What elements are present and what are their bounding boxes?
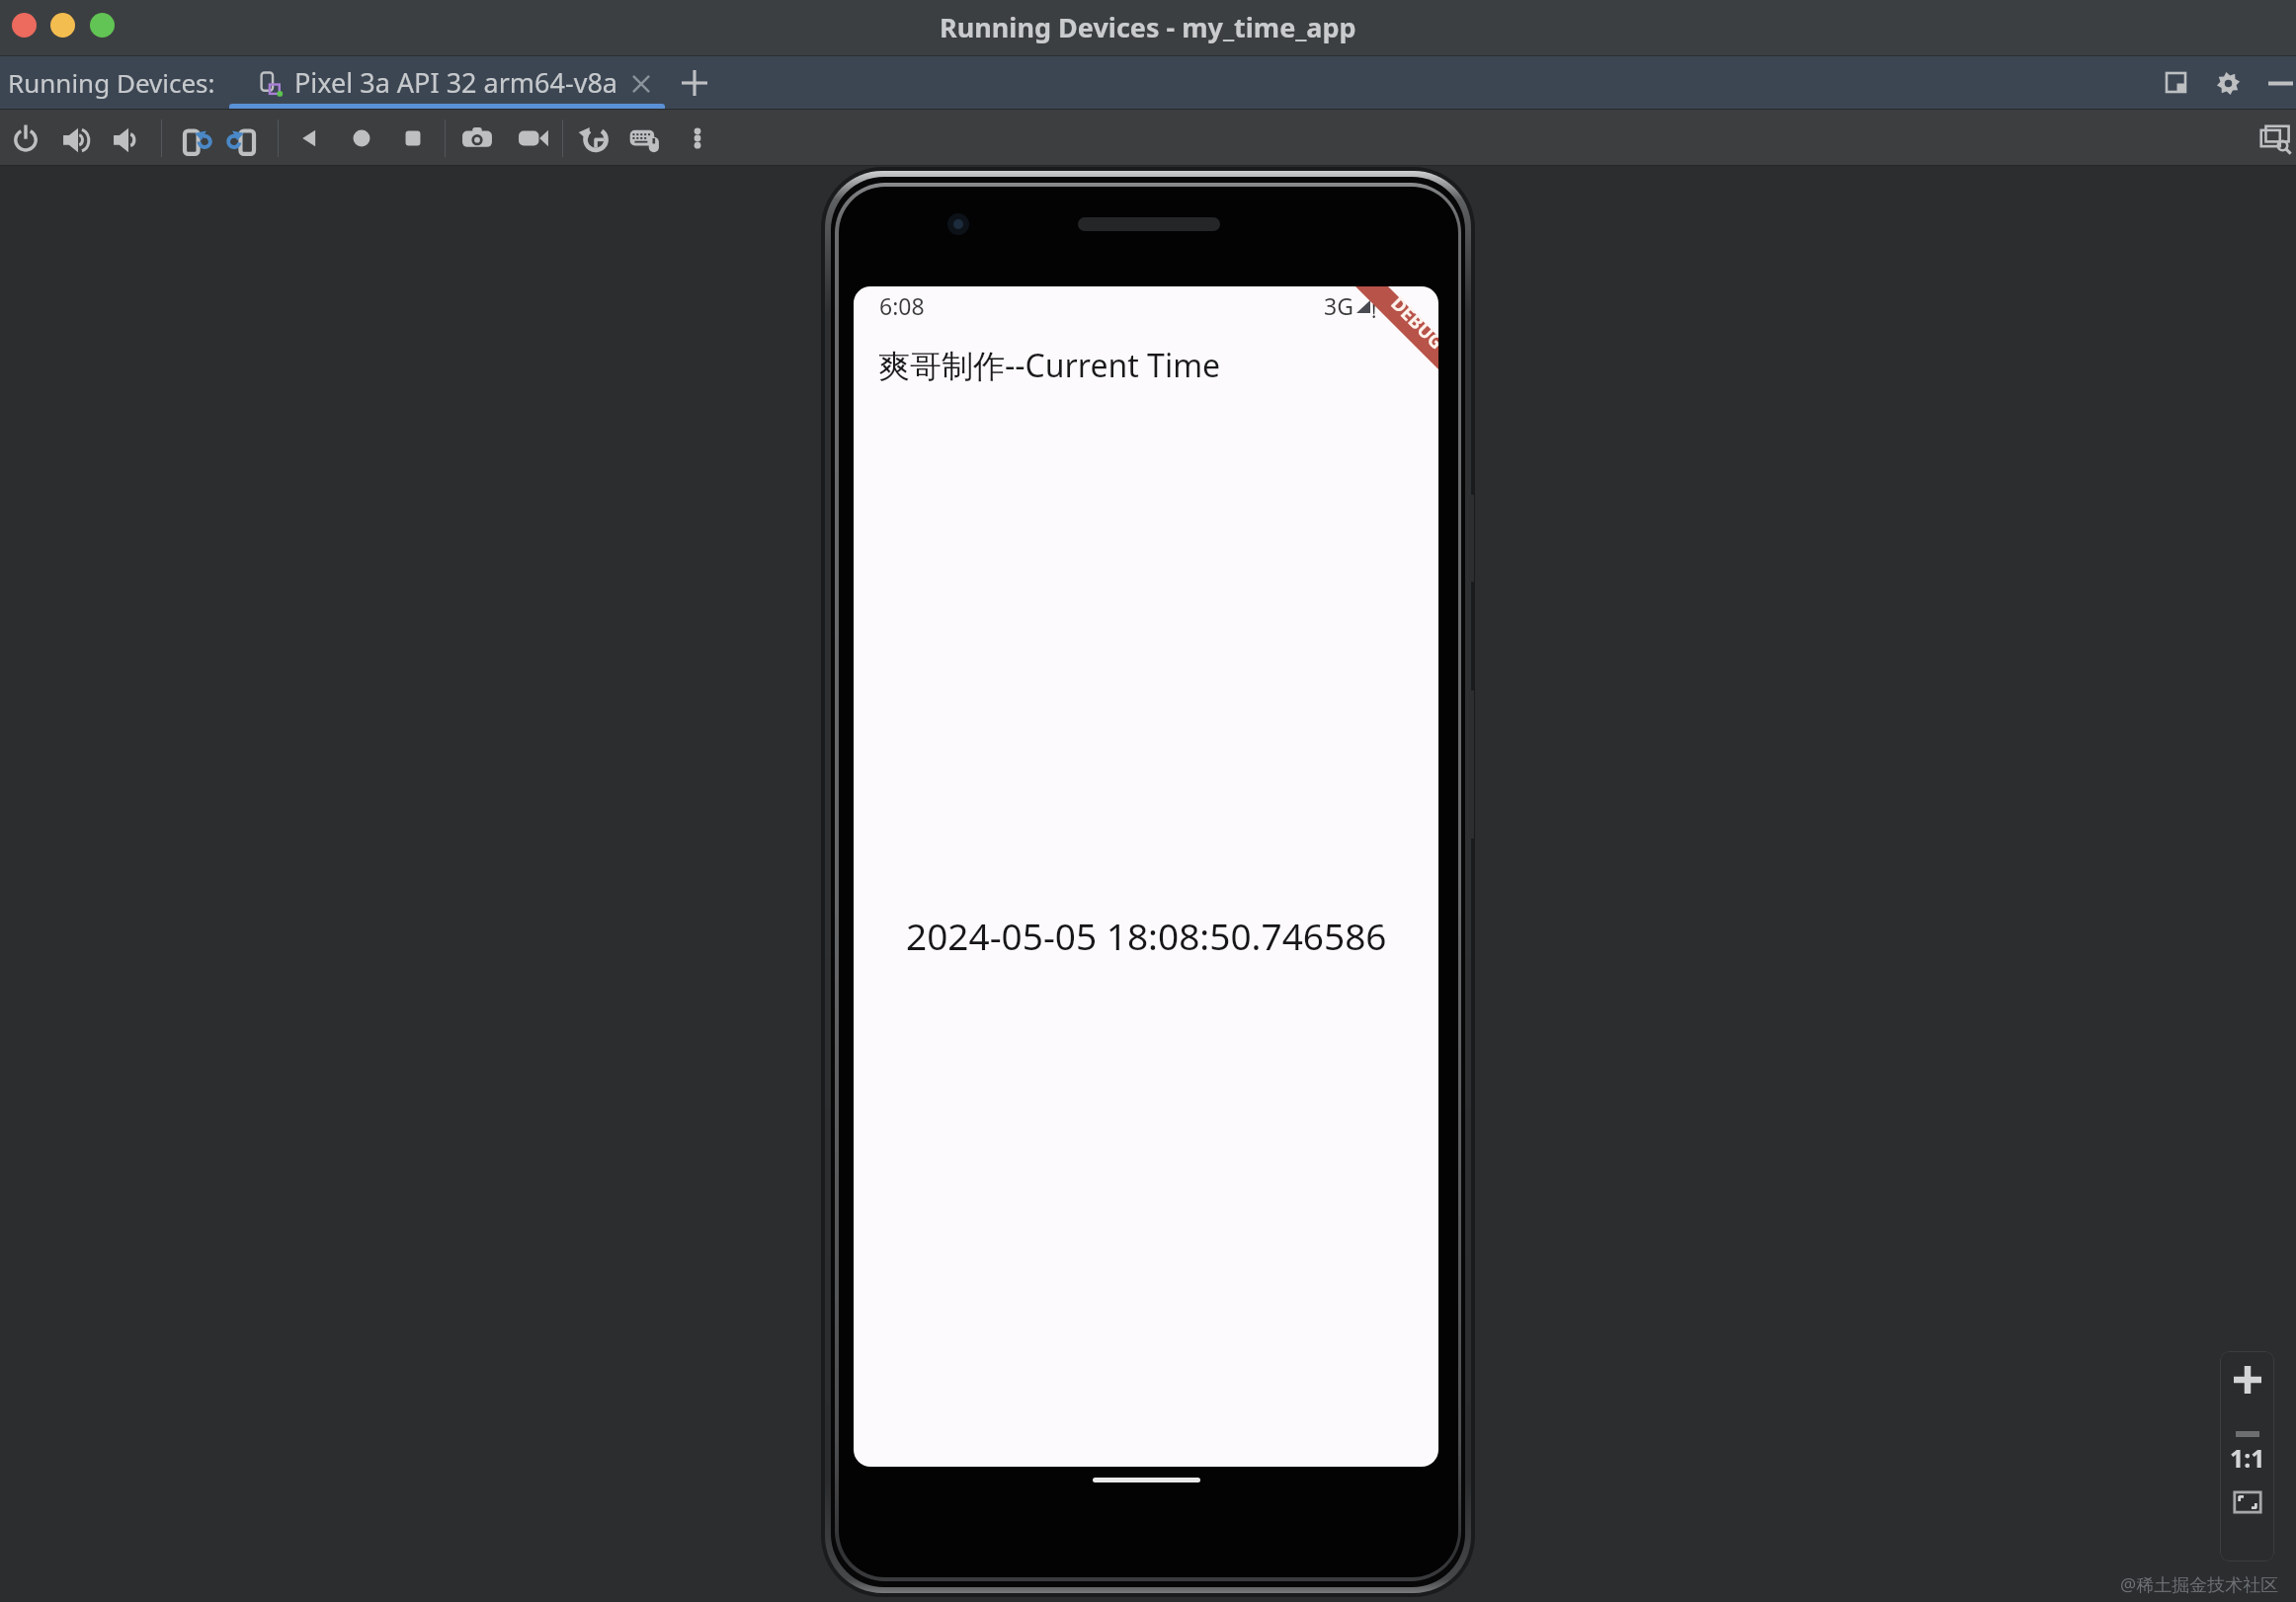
button[interactable]: Actual size bbox=[2226, 1436, 2269, 1480]
button[interactable]: Maximize bbox=[90, 13, 115, 38]
button[interactable]: Take screenshot bbox=[460, 121, 494, 155]
button[interactable]: Rotate right bbox=[227, 121, 261, 155]
button[interactable]: Split layout bbox=[2165, 71, 2189, 96]
staticText: 3G bbox=[1324, 290, 1353, 321]
button[interactable]: Zoom in bbox=[2226, 1358, 2269, 1402]
button[interactable]: Hardware input bbox=[629, 121, 663, 155]
button[interactable]: Volume down bbox=[111, 121, 144, 155]
button[interactable]: Rotate left bbox=[178, 121, 211, 155]
button[interactable]: Fit to window bbox=[2226, 1481, 2269, 1524]
button[interactable]: More bbox=[681, 121, 714, 155]
staticText: 爽哥制作--Current Time bbox=[878, 344, 1221, 387]
staticText: @稀土掘金技术社区 bbox=[2120, 1572, 2279, 1597]
button[interactable]: Zoom out bbox=[2226, 1412, 2269, 1456]
staticText: Running Devices: bbox=[8, 65, 215, 100]
button[interactable]: Volume up bbox=[60, 121, 94, 155]
button[interactable]: Layout inspector bbox=[2258, 121, 2292, 155]
button[interactable]: Record screen bbox=[517, 121, 550, 155]
staticText: DEBUG bbox=[1386, 291, 1438, 355]
button[interactable]: Close device tab bbox=[628, 71, 654, 97]
button[interactable]: Settings bbox=[2216, 71, 2241, 96]
staticText: 6:08 bbox=[879, 290, 925, 321]
button[interactable]: Add device bbox=[678, 66, 711, 100]
button[interactable]: Emulator screen bbox=[854, 286, 1438, 1467]
staticText: Running Devices - my_time_app bbox=[940, 9, 1356, 45]
button[interactable]: Hide tool window bbox=[2268, 71, 2293, 96]
staticText: ! bbox=[1371, 297, 1377, 324]
button[interactable]: Close bbox=[12, 13, 37, 38]
staticText: 2024-05-05 18:08:50.746586 bbox=[906, 911, 1387, 960]
button[interactable]: Back bbox=[292, 121, 326, 155]
staticText: 1:1 bbox=[2230, 1441, 2265, 1475]
button[interactable]: Minimize bbox=[50, 13, 75, 38]
button[interactable]: Pixel 3a API 32 arm64-v8a bbox=[259, 65, 654, 102]
button[interactable]: Power bbox=[9, 121, 42, 155]
button[interactable]: Snapshots bbox=[577, 121, 611, 155]
staticText: Pixel 3a API 32 arm64-v8a bbox=[294, 64, 617, 101]
button[interactable]: Overview bbox=[396, 121, 430, 155]
button[interactable]: Home bbox=[345, 121, 378, 155]
